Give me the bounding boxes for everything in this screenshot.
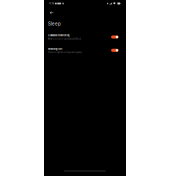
staticText: Monitors your heart rate and sleep SpO2 … (48, 38, 81, 40)
staticText: Breathing rate (48, 47, 62, 50)
button[interactable]: Back (44, 8, 126, 17)
button[interactable]: Advanced monitoring (44, 30, 126, 44)
staticText: Advanced monitoring (48, 34, 69, 37)
staticText: Sleep (48, 21, 61, 26)
button[interactable]: Breathing rate (44, 44, 126, 57)
staticText: 10:09 (49, 2, 54, 5)
staticText: Shows your nightly breathing rate during… (48, 51, 82, 53)
